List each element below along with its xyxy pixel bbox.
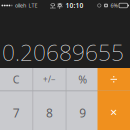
staticText: +/−: [43, 74, 56, 85]
button[interactable]: 8: [33, 91, 66, 130]
staticText: C: [13, 72, 20, 86]
staticText: olleh: [15, 2, 26, 9]
staticText: %: [78, 72, 87, 86]
button[interactable]: %: [66, 68, 99, 91]
staticText: 6%: [110, 2, 117, 9]
button[interactable]: C: [0, 68, 32, 91]
button[interactable]: Divide: [97, 68, 130, 91]
staticText: 오후 10:10: [50, 1, 84, 10]
staticText: ✕: [110, 107, 118, 118]
staticText: LTE: [28, 2, 37, 9]
staticText: 7: [13, 105, 20, 121]
staticText: 9: [79, 105, 86, 121]
staticText: 0.20689655: [2, 37, 124, 67]
button[interactable]: Multiply: [97, 91, 130, 130]
button[interactable]: 7: [0, 91, 32, 130]
button[interactable]: Plus minus: [33, 68, 66, 91]
button[interactable]: 9: [66, 91, 99, 130]
staticText: 8: [46, 105, 53, 121]
